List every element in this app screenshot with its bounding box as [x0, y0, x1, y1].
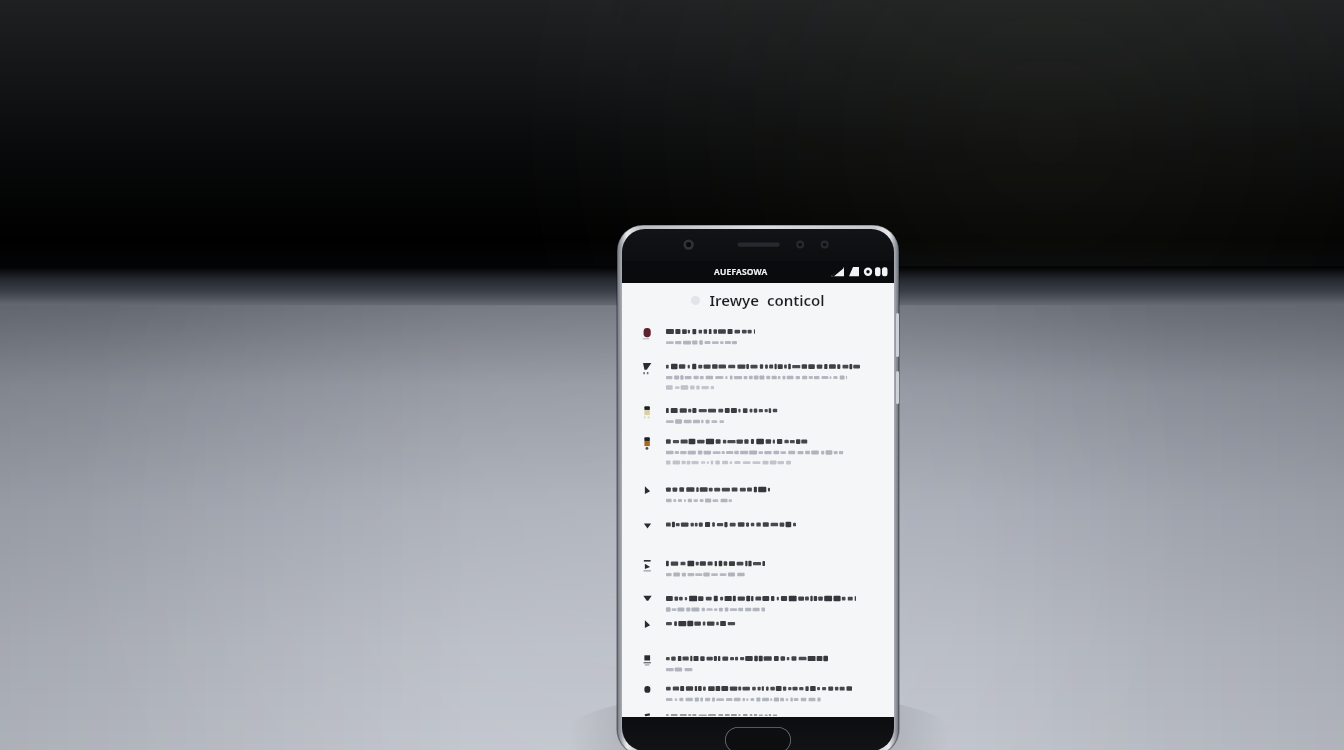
- button[interactable]: [636, 683, 882, 705]
- button[interactable]: [636, 653, 882, 675]
- button[interactable]: [636, 361, 882, 392]
- other: Power: [896, 371, 899, 404]
- button[interactable]: Home: [725, 727, 791, 750]
- button[interactable]: [636, 618, 882, 640]
- button[interactable]: [636, 436, 882, 467]
- staticText: AUEFASOWA: [714, 266, 768, 278]
- button[interactable]: [636, 713, 882, 717]
- staticText: Irewye conticol: [709, 290, 825, 310]
- button[interactable]: [636, 484, 882, 506]
- button[interactable]: [636, 593, 882, 615]
- button[interactable]: [636, 519, 882, 541]
- button[interactable]: [636, 558, 882, 580]
- button[interactable]: Irewye conticol: [622, 283, 894, 317]
- button[interactable]: [636, 405, 882, 427]
- other: Volume: [896, 313, 899, 357]
- button[interactable]: [636, 326, 882, 348]
